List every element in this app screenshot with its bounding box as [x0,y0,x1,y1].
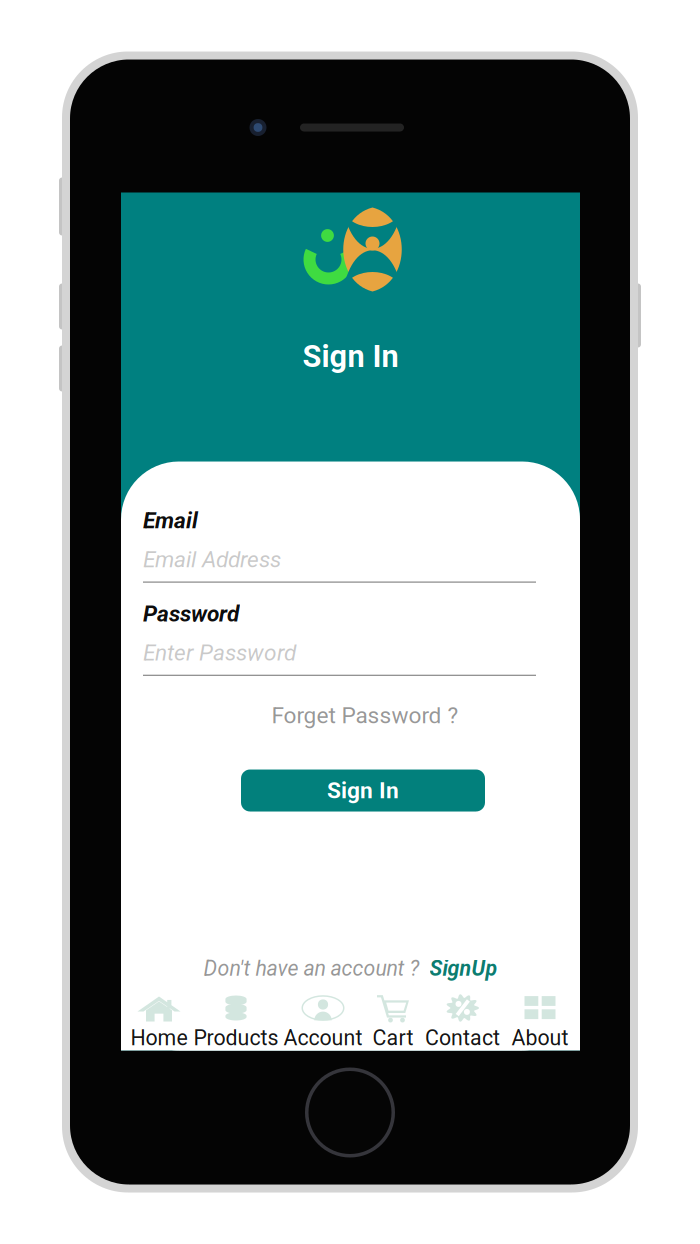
button[interactable]: SignUp [429,956,497,981]
button[interactable]: Sign In [241,769,485,811]
staticText: Account [283,1025,362,1050]
staticText: Forget Password ? [271,702,458,729]
button[interactable]: Account [280,994,366,1050]
staticText: Sign In [327,777,399,804]
button[interactable]: Forget Password ? [245,700,485,730]
staticText: Cart [372,1025,413,1050]
staticText: Sign In [302,338,398,374]
button[interactable]: Home [126,994,192,1050]
button[interactable]: Cart [366,994,420,1050]
button[interactable]: Contact [420,994,505,1050]
button[interactable]: About [505,994,575,1050]
staticText: Contact [425,1025,500,1050]
staticText: Enter Password [143,639,296,666]
staticText: Password [143,600,239,627]
button[interactable]: Products [192,994,280,1050]
staticText: Email Address [143,546,281,573]
staticText: Home [130,1025,187,1050]
staticText: Don't have an account ? [203,956,419,981]
staticText: About [511,1025,568,1050]
staticText: Email [143,507,198,534]
staticText: Products [193,1025,278,1050]
staticText: SignUp [429,956,497,981]
